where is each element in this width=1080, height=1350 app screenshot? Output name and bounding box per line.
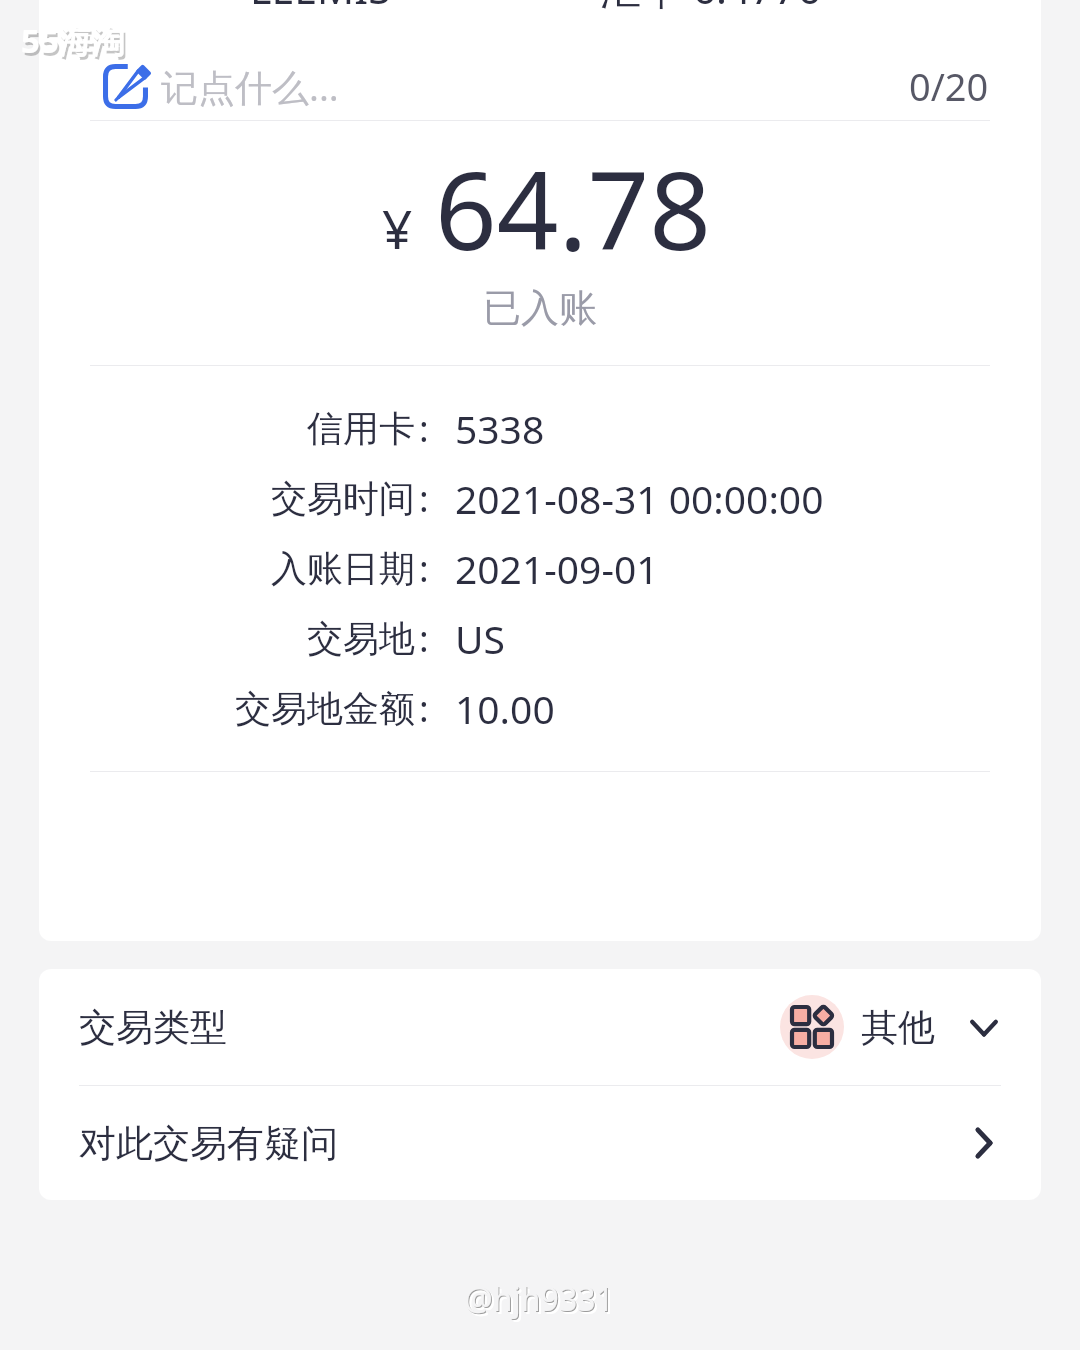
other: Open transaction dispute bbox=[962, 1121, 1006, 1165]
staticText: 55海淘 bbox=[21, 18, 125, 63]
staticText: @hjh9331 bbox=[464, 1277, 614, 1321]
staticText: 记点什么... bbox=[161, 61, 339, 112]
staticText: : bbox=[419, 614, 459, 663]
other: Add a note bbox=[103, 64, 148, 109]
staticText: : bbox=[419, 684, 459, 733]
button[interactable]: 对此交易有疑问 bbox=[39, 1086, 1041, 1200]
staticText: 汇率 6.4776 bbox=[600, 0, 821, 16]
staticText: LEEMIS bbox=[250, 0, 391, 16]
staticText: 信用卡 bbox=[39, 406, 415, 451]
staticText: 交易地 bbox=[39, 616, 415, 661]
staticText: 64.78 bbox=[435, 135, 712, 282]
staticText: 已入账 bbox=[39, 284, 1041, 332]
staticText: @hjh9331 bbox=[467, 1280, 617, 1324]
staticText: 5338 bbox=[455, 402, 545, 455]
button[interactable]: Add a note bbox=[39, 48, 1041, 124]
staticText: 55海淘 bbox=[23, 21, 127, 66]
staticText: 交易类型 bbox=[79, 1004, 227, 1051]
staticText: 入账日期 bbox=[39, 546, 415, 591]
staticText: @hjh9331 bbox=[465, 1278, 615, 1322]
button[interactable]: 交易类型 bbox=[39, 969, 1041, 1085]
other: Expand transaction type bbox=[962, 1005, 1006, 1049]
staticText: 2021-09-01 bbox=[455, 542, 659, 595]
staticText: 2021-08-31 00:00:00 bbox=[455, 472, 824, 525]
staticText: 交易时间 bbox=[39, 476, 415, 521]
staticText: 0/20 bbox=[909, 60, 989, 112]
staticText: 10.00 bbox=[455, 682, 555, 735]
staticText: 对此交易有疑问 bbox=[79, 1120, 338, 1167]
staticText: : bbox=[419, 404, 459, 453]
staticText: : bbox=[419, 474, 459, 523]
staticText: 交易地金额 bbox=[39, 686, 415, 731]
staticText: 其他 bbox=[861, 1004, 935, 1051]
staticText: US bbox=[455, 612, 505, 665]
staticText: : bbox=[419, 544, 459, 593]
staticText: ¥ bbox=[382, 192, 413, 264]
